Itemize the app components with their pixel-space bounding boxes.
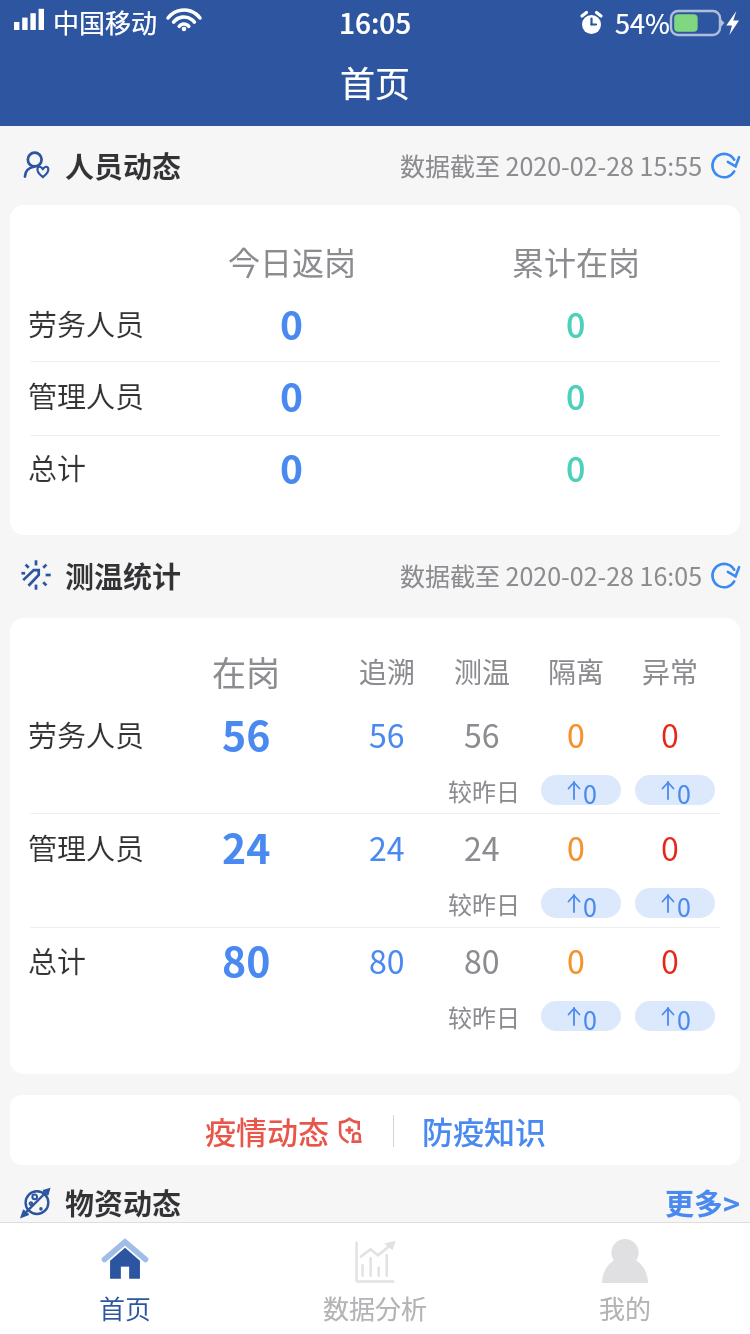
staticText: 总计 — [28, 939, 87, 981]
staticText: 16:05 — [339, 2, 412, 43]
staticText: 测温统计 — [65, 554, 182, 596]
staticText: 较昨日 — [448, 999, 520, 1034]
button[interactable]: 刷新 — [708, 148, 742, 182]
staticText: 0 — [677, 888, 691, 918]
button[interactable]: 疫情动态 — [205, 1102, 365, 1159]
staticText: 24 — [222, 816, 271, 875]
staticText: 0 — [566, 299, 586, 348]
staticText: 疫情动态 — [205, 1108, 329, 1153]
staticText: 0 — [677, 1001, 691, 1031]
staticText: 0 — [567, 937, 585, 983]
staticText: 0 — [661, 711, 679, 757]
staticText: 管理人员 — [28, 374, 145, 416]
staticText: 在岗 — [212, 647, 280, 696]
staticText: 首页 — [99, 1289, 152, 1327]
staticText: 0 — [567, 824, 585, 870]
staticText: 0 — [583, 888, 597, 918]
staticText: 较昨日 — [448, 773, 520, 808]
staticText: 0 — [280, 295, 304, 351]
staticText: 0 — [583, 1001, 597, 1031]
staticText: 0 — [661, 937, 679, 983]
staticText: 我的 — [599, 1289, 652, 1327]
staticText: 劳务人员 — [28, 713, 145, 755]
staticText: 总计 — [28, 446, 87, 488]
staticText: 劳务人员 — [28, 302, 145, 344]
staticText: 56 — [222, 703, 271, 762]
staticText: 今日返岗 — [228, 238, 357, 284]
staticText: 24 — [369, 824, 405, 870]
staticText: 24 — [464, 824, 500, 870]
button[interactable]: 刷新 — [708, 558, 742, 592]
staticText: 56 — [369, 711, 405, 757]
button[interactable]: 更多> — [663, 1181, 743, 1223]
staticText: 中国移动 — [53, 3, 158, 41]
staticText: 数据分析 — [323, 1289, 428, 1327]
staticText: 56 — [464, 711, 500, 757]
staticText: 数据截至 2020-02-28 16:05 — [400, 557, 703, 593]
staticText: 0 — [280, 367, 304, 423]
staticText: 0 — [566, 443, 586, 492]
staticText: 80 — [369, 937, 405, 983]
staticText: 54% — [615, 3, 670, 42]
staticText: 人员动态 — [65, 144, 182, 186]
staticText: 测温 — [454, 651, 511, 692]
button[interactable]: 我的 — [500, 1223, 750, 1334]
staticText: 80 — [222, 929, 271, 988]
staticText: 管理人员 — [28, 826, 145, 868]
staticText: 物资动态 — [65, 1181, 182, 1223]
staticText: 较昨日 — [448, 886, 520, 921]
staticText: 0 — [280, 439, 304, 495]
button[interactable]: 防疫知识 — [422, 1102, 546, 1159]
staticText: 隔离 — [548, 651, 605, 692]
staticText: 追溯 — [359, 651, 416, 692]
staticText: 0 — [567, 711, 585, 757]
staticText: 异常 — [642, 651, 699, 692]
button[interactable]: 首页 — [0, 1223, 250, 1334]
staticText: 累计在岗 — [512, 238, 641, 284]
button[interactable]: 数据分析 — [250, 1223, 500, 1334]
staticText: 80 — [464, 937, 500, 983]
staticText: 首页 — [0, 56, 750, 107]
staticText: 0 — [677, 775, 691, 805]
staticText: 0 — [583, 775, 597, 805]
staticText: 0 — [566, 371, 586, 420]
staticText: 数据截至 2020-02-28 15:55 — [400, 147, 703, 183]
staticText: 0 — [661, 824, 679, 870]
